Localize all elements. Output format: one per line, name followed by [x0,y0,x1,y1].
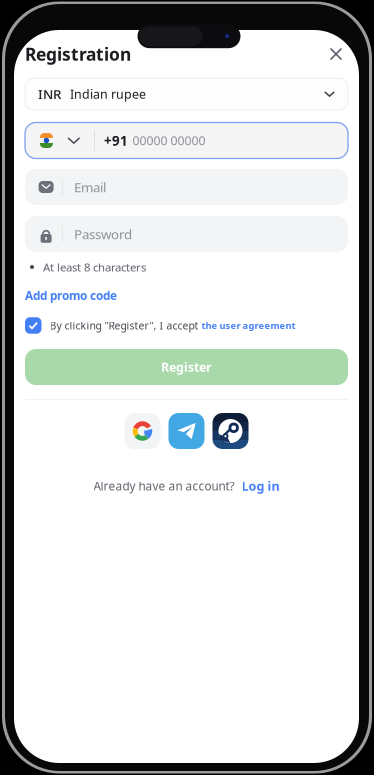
staticText: Register [161,359,212,375]
button[interactable]: Phone number [25,122,348,158]
staticText: Log in [241,477,279,495]
button[interactable]: Password [25,216,348,252]
staticText: Password [74,225,132,243]
staticText: Email [74,178,106,196]
staticText: Indian rupee [70,86,146,102]
staticText: INR [38,85,61,103]
button[interactable]: Close [324,42,348,66]
button[interactable]: Add promo code [25,289,117,302]
button[interactable]: Accept the user agreement [25,317,41,334]
button[interactable]: Currency: INR Indian rupee [25,78,348,110]
button[interactable]: Register [25,349,348,385]
staticText: Add promo code [25,287,117,303]
button[interactable]: Email [25,169,348,205]
button[interactable]: Continue with Steam [212,413,248,449]
staticText: the user agreement [201,319,295,332]
button[interactable]: Continue with Telegram [168,413,204,449]
button[interactable]: Continue with Google [124,413,160,449]
button[interactable]: the user agreement [198,319,295,332]
staticText: Already have an account? [93,478,234,494]
staticText: +91 [104,131,128,150]
staticText: By clicking "Register", I accept [49,318,198,333]
staticText: 00000 00000 [132,132,205,149]
button[interactable]: Log in [234,477,279,495]
staticText: Registration [25,42,131,66]
staticText: At least 8 characters [43,259,146,275]
